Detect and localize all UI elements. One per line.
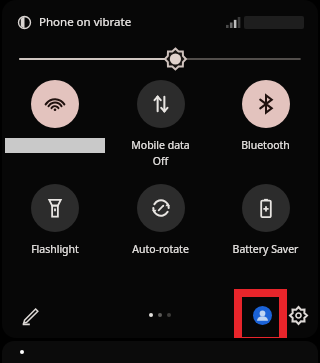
staticText: Battery Saver xyxy=(213,242,318,256)
staticText: Off xyxy=(108,154,213,168)
button[interactable]: User account xyxy=(244,297,280,333)
button[interactable]: Wi-Fi xyxy=(2,80,108,170)
staticText: Phone on vibrate xyxy=(39,14,132,30)
button[interactable]: Auto-rotate xyxy=(108,184,213,274)
staticText: Bluetooth xyxy=(213,138,318,152)
staticText: Flashlight xyxy=(2,242,108,256)
button[interactable]: Settings xyxy=(282,299,314,331)
button[interactable]: Brightness xyxy=(20,44,300,74)
button[interactable]: Edit tiles xyxy=(12,298,46,332)
button[interactable]: Bluetooth xyxy=(213,80,318,170)
button[interactable]: Flashlight xyxy=(2,184,108,274)
staticText: Mobile data xyxy=(108,138,213,152)
staticText: Auto-rotate xyxy=(108,242,213,256)
button[interactable]: Mobile data xyxy=(108,80,213,170)
button[interactable]: Battery Saver xyxy=(213,184,318,274)
